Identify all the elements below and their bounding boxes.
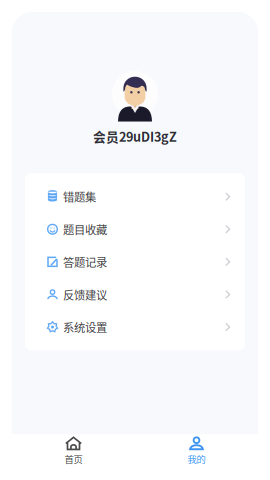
- button[interactable]: 错题集: [25, 180, 245, 213]
- button[interactable]: 答题记录: [25, 245, 245, 278]
- button[interactable]: 首页: [38, 434, 108, 468]
- button[interactable]: 反馈建议: [25, 278, 245, 311]
- button[interactable]: 题目收藏: [25, 213, 245, 245]
- staticText: 反馈建议: [63, 286, 107, 303]
- staticText: 错题集: [63, 188, 96, 205]
- staticText: 系统设置: [63, 319, 107, 335]
- staticText: 题目收藏: [63, 221, 107, 237]
- staticText: 答题记录: [63, 254, 107, 270]
- button[interactable]: 我的: [161, 434, 231, 468]
- button[interactable]: 系统设置: [25, 311, 245, 343]
- staticText: 首页: [64, 452, 82, 466]
- staticText: 我的: [187, 452, 205, 466]
- staticText: 会员29uDI3gZ: [93, 127, 177, 145]
